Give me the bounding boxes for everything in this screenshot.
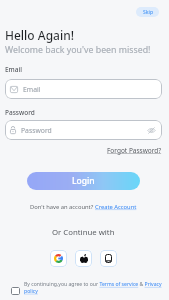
button[interactable]: Forgot Password? xyxy=(107,146,162,155)
staticText: Hello Again! xyxy=(5,27,75,43)
button[interactable]: Login xyxy=(27,172,140,190)
staticText: Login xyxy=(72,175,95,187)
staticText: Email xyxy=(23,85,41,94)
staticText: Or Continue with xyxy=(52,227,115,238)
staticText: Email xyxy=(5,65,23,74)
button[interactable]: Sign in with Apple xyxy=(75,250,92,267)
button[interactable]: Password xyxy=(5,120,162,140)
button[interactable]: Agree to terms and privacy policy xyxy=(11,287,20,295)
button[interactable]: Skip xyxy=(136,7,159,17)
staticText: By continuing,you agree to our Terms of … xyxy=(24,281,162,295)
button[interactable]: Sign in with phone number xyxy=(100,250,117,267)
staticText: Skip xyxy=(143,9,153,16)
button[interactable]: Email xyxy=(5,79,162,99)
button[interactable]: Create Account xyxy=(95,203,137,211)
staticText: Don't have an account? xyxy=(30,203,95,211)
staticText: Password xyxy=(5,108,35,117)
staticText: Welcome back you've been missed! xyxy=(5,44,151,56)
button[interactable]: Sign in with Google xyxy=(50,250,67,267)
staticText: Password xyxy=(21,126,52,135)
